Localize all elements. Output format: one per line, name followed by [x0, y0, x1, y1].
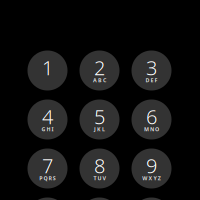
staticText: 8 — [94, 152, 105, 179]
staticText: Q — [43, 175, 47, 182]
staticText: F — [155, 77, 158, 84]
button[interactable]: 3 DEF — [131, 50, 171, 90]
button[interactable]: 5 JKL — [79, 99, 119, 139]
staticText: 6 — [146, 103, 157, 130]
button[interactable]: 9 WXYZ — [131, 148, 171, 188]
staticText: V — [103, 175, 106, 182]
staticText: S — [53, 175, 56, 182]
staticText: O — [155, 126, 159, 133]
staticText: I — [52, 126, 54, 133]
staticText: W — [142, 175, 147, 182]
button[interactable]: 8 TUV — [79, 148, 119, 188]
staticText: L — [102, 126, 105, 133]
staticText: 4 — [42, 103, 53, 130]
button[interactable]: 1 — [27, 50, 67, 90]
staticText: J — [94, 126, 96, 133]
staticText: K — [97, 126, 101, 133]
staticText: A — [93, 77, 97, 84]
staticText: N — [150, 126, 154, 133]
staticText: U — [97, 175, 101, 182]
staticText: Z — [158, 175, 161, 182]
staticText: 9 — [146, 152, 157, 179]
staticText: 1 — [42, 54, 53, 81]
staticText: E — [150, 77, 153, 84]
staticText: 2 — [94, 54, 105, 81]
staticText: T — [93, 175, 96, 182]
button[interactable]: ∗ — [27, 197, 67, 200]
button[interactable]: 6 MNO — [131, 99, 171, 139]
staticText: G — [41, 126, 45, 133]
staticText: D — [145, 77, 149, 84]
staticText: M — [144, 126, 149, 133]
staticText: H — [46, 126, 50, 133]
staticText: P — [39, 175, 42, 182]
staticText: C — [103, 77, 106, 84]
staticText: X — [148, 175, 152, 182]
staticText: Y — [153, 175, 156, 182]
staticText: 5 — [94, 103, 105, 130]
button[interactable]: 4 GHI — [27, 99, 67, 139]
button[interactable]: 0 + — [79, 197, 119, 200]
staticText: 7 — [42, 152, 53, 179]
button[interactable]: 7 PQRS — [27, 148, 67, 188]
staticText: B — [98, 77, 102, 84]
button[interactable]: # — [131, 197, 171, 200]
staticText: 3 — [146, 54, 157, 81]
staticText: R — [48, 175, 51, 182]
button[interactable]: 2 ABC — [79, 50, 119, 90]
